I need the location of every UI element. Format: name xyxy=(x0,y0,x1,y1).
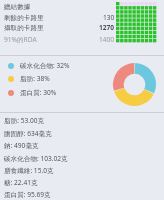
button[interactable]: 攝取的卡路里 xyxy=(4,23,115,32)
staticText: 碳水化合物: 103.02克 xyxy=(4,154,68,163)
button[interactable]: 剩餘的卡路里 xyxy=(4,13,115,22)
staticText: 91%的RDA xyxy=(4,35,37,44)
staticText: 1400 xyxy=(99,35,115,44)
button[interactable]: 蛋白質: 30% xyxy=(8,88,57,97)
staticText: 脂肪: 53.00克 xyxy=(4,116,45,125)
staticText: 碳水化合物: 32% xyxy=(20,61,70,70)
staticText: 膳食纖維: 15.0克 xyxy=(4,166,54,175)
staticText: 剩餘的卡路里 xyxy=(4,14,44,22)
staticText: 蛋白質: 95.69克 xyxy=(4,190,51,199)
staticText: 脂肪: 38% xyxy=(20,74,50,83)
staticText: 糖: 22.41克 xyxy=(4,178,38,187)
button[interactable]: 碳水化合物: 32% xyxy=(8,61,70,70)
button[interactable]: 脂肪: 38% xyxy=(8,74,50,83)
staticText: 攝取的卡路里 xyxy=(4,24,44,32)
staticText: 130 xyxy=(103,13,115,22)
staticText: 總結數據 xyxy=(4,3,31,11)
button[interactable]: 91%的RDA xyxy=(4,35,115,44)
staticText: 1270 xyxy=(99,23,115,32)
staticText: 膽固醇: 634毫克 xyxy=(4,129,52,138)
staticText: 鈉: 490毫克 xyxy=(4,141,39,150)
staticText: 蛋白質: 30% xyxy=(20,88,57,97)
